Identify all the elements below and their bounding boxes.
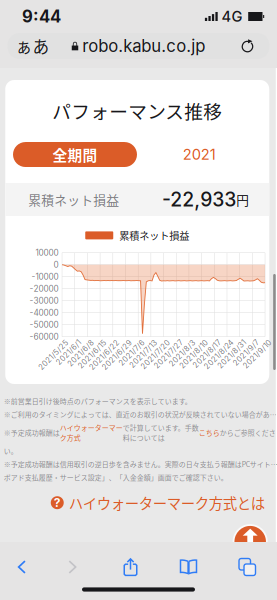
staticText: ボアド支払履歴・サービス設定」、「入金金額」画面でご確認下さい。 — [4, 472, 228, 482]
button[interactable]: Reload page — [225, 33, 269, 59]
staticText: 2021/8/17 — [181, 338, 217, 347]
staticText: 円 — [236, 190, 249, 209]
staticText: -20000 — [29, 284, 58, 294]
staticText: ※予定成功報酬は — [4, 427, 60, 437]
staticText: 2021/8/31 — [205, 338, 242, 347]
staticText: ? — [54, 495, 61, 510]
staticText: 2021/8/24 — [191, 338, 229, 347]
staticText: 2021/6/29 — [89, 338, 128, 347]
staticText: 全期間 — [52, 144, 97, 165]
button[interactable]: Forward — [43, 550, 101, 584]
staticText: 2021/6/1 — [45, 338, 77, 347]
staticText: -30000 — [29, 296, 58, 306]
staticText: 0 — [53, 260, 58, 270]
staticText: パフォーマンス推移 — [52, 97, 222, 124]
button[interactable]: 全期間 — [13, 142, 137, 167]
staticText: 2021/6/15 — [66, 338, 103, 347]
staticText: ※予定成功報酬は信用取引の逆日歩を含みません。実際の日々支払う報酬はPCサイトの… — [4, 459, 277, 469]
staticText: ぁあ — [15, 34, 49, 58]
staticText: 2021/9/10 — [231, 338, 268, 347]
staticText: 金融商品取引業者登録：関東財務局長（金商）第61号 — [2, 584, 171, 594]
staticText: -50000 — [29, 320, 58, 330]
staticText: 2021/8/3 — [157, 338, 191, 347]
staticText: こちら — [199, 427, 220, 437]
staticText: 4G — [222, 8, 243, 25]
staticText: -22,933 — [162, 188, 236, 211]
staticText: い。 — [4, 446, 18, 456]
button[interactable]: Tabs — [217, 550, 277, 584]
staticText: で計算しています。手数料については — [123, 422, 199, 443]
staticText: 2021 — [183, 146, 216, 163]
staticText: ハイウォーターマーク方式 — [60, 422, 123, 443]
staticText: 累積ネット損益 — [119, 228, 189, 243]
staticText: 9:44 — [22, 6, 61, 27]
staticText: -60000 — [29, 332, 58, 342]
staticText: auカブコム証券株式会社 — [2, 571, 80, 581]
staticText: -40000 — [29, 308, 58, 318]
staticText: 2021/6/22 — [76, 338, 115, 347]
button[interactable]: ? — [51, 490, 265, 515]
staticText: 2021/5/25 — [26, 338, 65, 347]
staticText: 2021/7/20 — [128, 338, 166, 347]
staticText: 2021/9/7 — [222, 338, 255, 347]
staticText: 10000 — [35, 248, 58, 258]
staticText: 2021/7/27 — [142, 338, 179, 347]
staticText: ※前営業日引け後時点のパフォーマンスを表示しています。 — [4, 396, 192, 406]
staticText: からご参照くださ — [220, 427, 276, 437]
button[interactable]: 2021 — [137, 142, 261, 167]
button[interactable]: Back to top — [233, 524, 268, 559]
button[interactable]: Bookmarks — [159, 550, 217, 584]
staticText: 2021/6/8 — [56, 338, 90, 347]
staticText: -10000 — [31, 272, 58, 282]
button[interactable]: Share — [101, 550, 159, 584]
staticText: 2021/7/6 — [108, 338, 141, 347]
staticText: 2021/7/13 — [117, 338, 153, 347]
button[interactable]: Back — [0, 550, 43, 584]
staticText: ハイウォーターマーク方式とは — [69, 492, 265, 513]
staticText: 累積ネット損益 — [28, 190, 119, 209]
staticText: ※ご利用のタイミングによっては、直近のお取引の状況が反映されていない場合がありま… — [4, 409, 277, 419]
staticText: 2021/8/10 — [167, 338, 204, 347]
button[interactable]: Text size options — [7, 33, 57, 59]
staticText: robo.kabu.co.jp — [82, 36, 205, 56]
